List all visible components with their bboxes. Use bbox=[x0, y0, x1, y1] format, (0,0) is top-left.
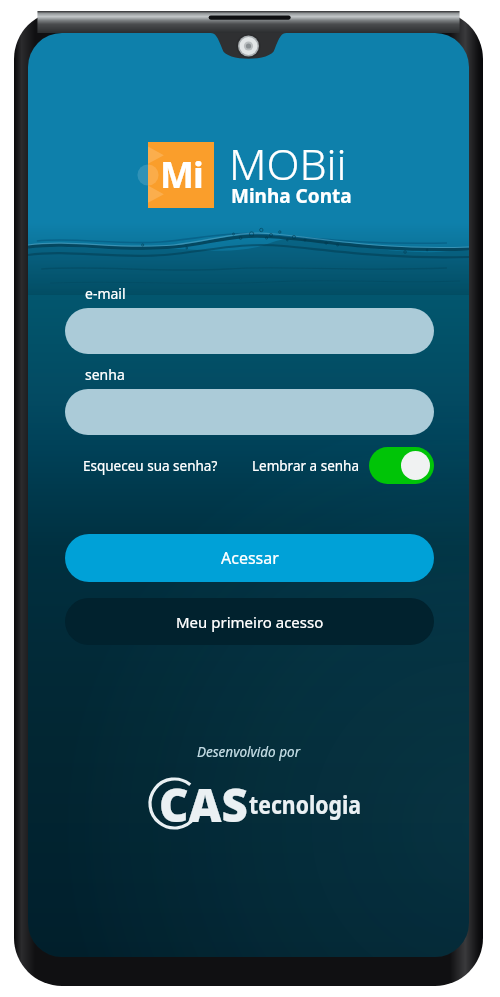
staticText: Lembrar a senha bbox=[252, 457, 360, 475]
button[interactable]: Lembrar a senha bbox=[369, 447, 434, 484]
staticText: Acessar bbox=[221, 547, 279, 569]
staticText: Meu primeiro acesso bbox=[176, 612, 324, 632]
button[interactable]: Meu primeiro acesso bbox=[65, 598, 434, 645]
button[interactable]: Campo de senha bbox=[65, 389, 434, 435]
staticText: Minha Conta bbox=[231, 183, 352, 209]
button[interactable]: Acessar bbox=[65, 534, 434, 582]
staticText: MOBii bbox=[229, 134, 347, 193]
staticText: tecnologia bbox=[249, 787, 361, 821]
staticText: Desenvolvido por bbox=[197, 743, 301, 761]
staticText: Mi bbox=[160, 150, 203, 199]
staticText: CAS bbox=[159, 773, 248, 823]
staticText: e-mail bbox=[85, 284, 126, 303]
button[interactable]: Esqueceu sua senha? bbox=[83, 457, 218, 475]
staticText: senha bbox=[85, 365, 125, 384]
button[interactable]: Campo de e-mail bbox=[65, 308, 434, 354]
